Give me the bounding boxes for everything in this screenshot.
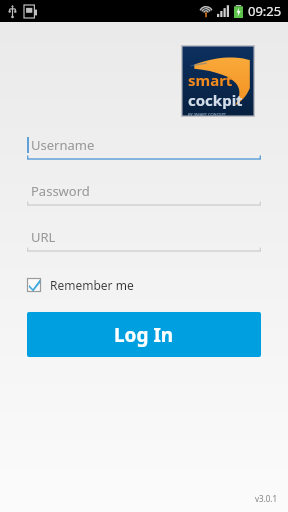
staticText: cockpit xyxy=(188,90,243,110)
button[interactable]: Username xyxy=(27,130,261,160)
button[interactable]: Remember me xyxy=(27,274,134,296)
button[interactable]: URL xyxy=(27,222,261,252)
staticText: Username xyxy=(31,136,95,154)
staticText: Password xyxy=(31,182,90,200)
staticText: 09:25 xyxy=(248,2,282,20)
staticText: Log In xyxy=(114,322,174,348)
other: SD card xyxy=(24,5,37,18)
other: USB connected xyxy=(6,5,19,18)
staticText: URL xyxy=(31,228,56,246)
staticText: Remember me xyxy=(50,277,134,293)
other: Battery charging xyxy=(234,5,243,18)
staticText: BY SMART CONCEPT xyxy=(188,112,227,117)
button[interactable]: Password xyxy=(27,176,261,206)
button[interactable]: Log In xyxy=(27,312,261,357)
staticText: smart xyxy=(188,70,233,90)
staticText: v3.0.1 xyxy=(255,493,278,504)
other: Wi-Fi xyxy=(199,4,213,18)
other: Signal strength xyxy=(217,5,230,17)
